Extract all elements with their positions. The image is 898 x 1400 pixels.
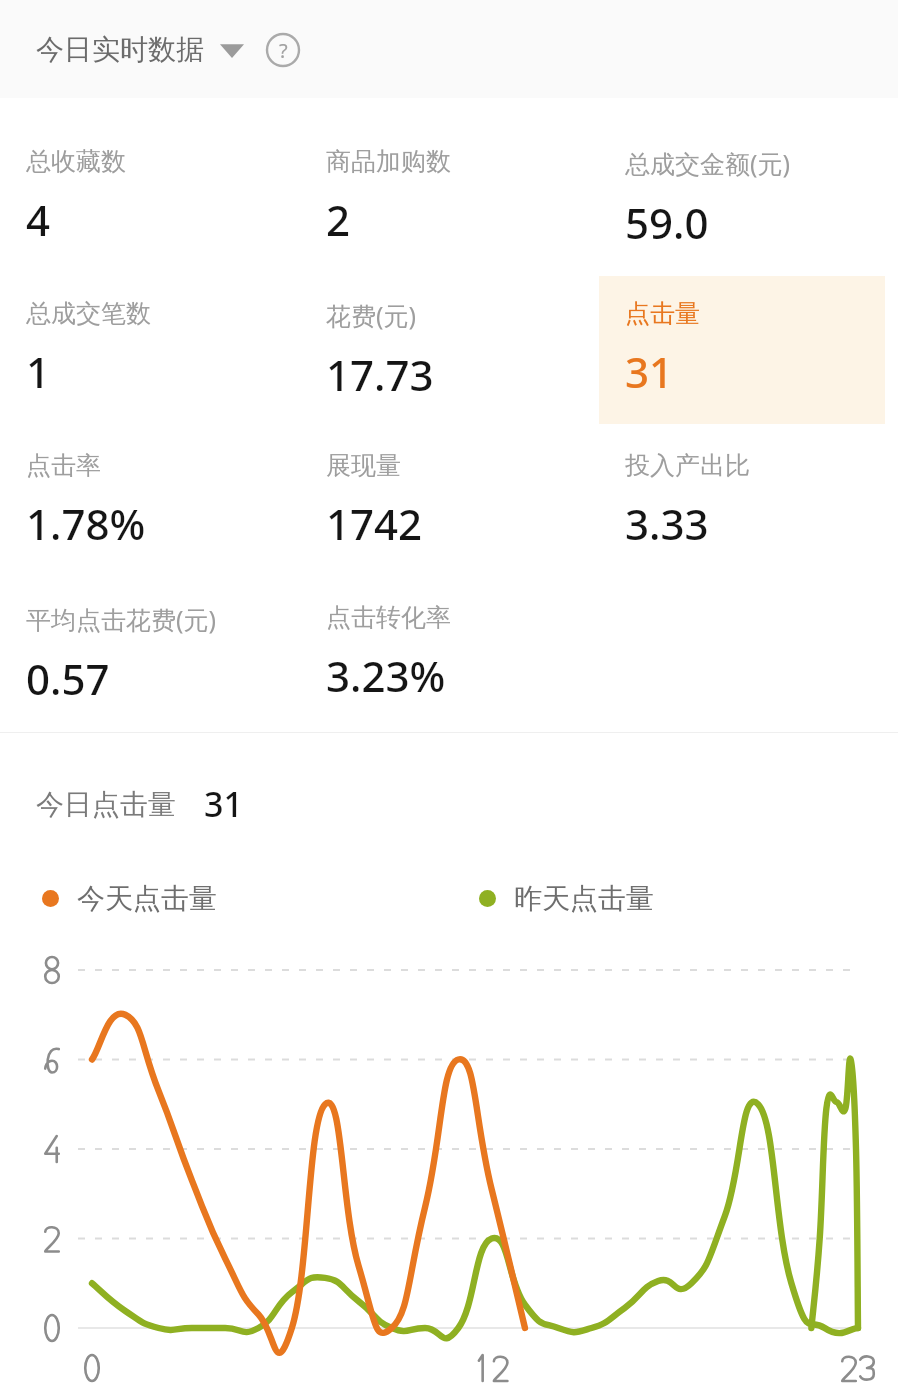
staticText: 展现量 xyxy=(326,450,401,481)
staticText: 昨天点击量 xyxy=(514,881,654,916)
staticText: ? xyxy=(279,37,288,64)
button[interactable]: 展现量 xyxy=(300,428,599,580)
staticText: 31 xyxy=(625,343,674,400)
staticText: 0.57 xyxy=(26,650,110,707)
button[interactable]: 点击转化率 xyxy=(300,580,599,732)
button[interactable]: 今日实时数据 xyxy=(36,22,244,77)
staticText: 59.0 xyxy=(625,194,709,251)
staticText: 1742 xyxy=(326,495,423,552)
button[interactable]: 点击率 xyxy=(0,428,300,580)
button[interactable]: 今天点击量 xyxy=(42,881,217,916)
staticText: 17.73 xyxy=(326,346,434,403)
staticText: 4 xyxy=(26,191,51,248)
staticText: 花费(元) xyxy=(326,298,417,332)
button[interactable]: 平均点击花费(元) xyxy=(0,580,300,732)
button[interactable]: 总成交笔数 xyxy=(0,276,300,428)
staticText: 点击量 xyxy=(625,298,700,329)
button[interactable]: 总成交金额(元) xyxy=(599,124,898,276)
button[interactable]: 商品加购数 xyxy=(300,124,599,276)
button[interactable]: 昨天点击量 xyxy=(479,881,654,916)
staticText: 今天点击量 xyxy=(77,881,217,916)
button[interactable]: 花费(元) xyxy=(300,276,599,428)
staticText: 1.78% xyxy=(26,495,146,552)
staticText: 31 xyxy=(204,781,243,827)
staticText: 今日点击量 xyxy=(36,787,176,822)
staticText: 3.33 xyxy=(625,495,709,552)
staticText: 总成交笔数 xyxy=(26,298,151,329)
staticText: 总收藏数 xyxy=(26,146,126,177)
staticText: 今日实时数据 xyxy=(36,32,204,67)
staticText: 平均点击花费(元) xyxy=(26,602,217,636)
staticText: 商品加购数 xyxy=(326,146,451,177)
staticText: 点击率 xyxy=(26,450,101,481)
staticText: 3.23% xyxy=(326,647,446,704)
staticText: 点击转化率 xyxy=(326,602,451,633)
staticText: 投入产出比 xyxy=(625,450,750,481)
staticText: 2 xyxy=(326,191,351,248)
button[interactable]: 投入产出比 xyxy=(599,428,898,580)
button[interactable]: Help xyxy=(262,29,304,71)
staticText: 总成交金额(元) xyxy=(625,146,791,180)
button[interactable]: 总收藏数 xyxy=(0,124,300,276)
staticText: 1 xyxy=(26,343,51,400)
button[interactable]: 点击量 xyxy=(599,276,885,424)
